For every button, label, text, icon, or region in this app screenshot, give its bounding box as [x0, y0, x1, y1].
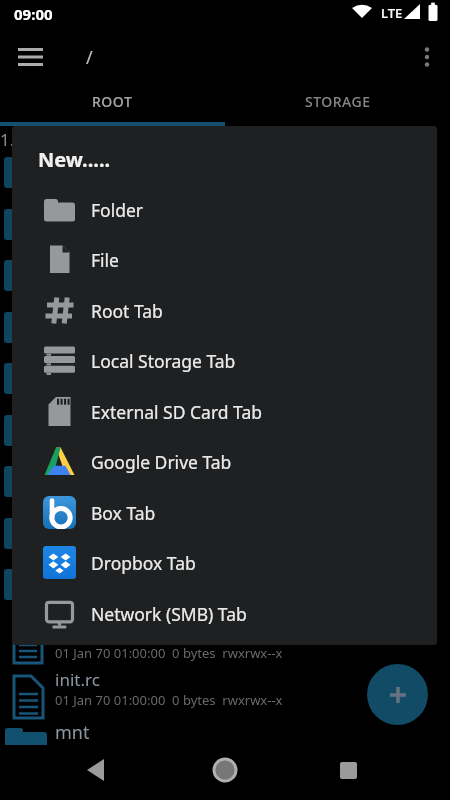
- staticText: Local Storage Tab: [91, 349, 236, 373]
- button[interactable]: Network (SMB) Tab: [12, 588, 437, 639]
- staticText: /: [86, 45, 93, 70]
- button[interactable]: ROOT: [0, 85, 225, 118]
- button[interactable]: [367, 664, 428, 725]
- staticText: Google Drive Tab: [91, 450, 232, 474]
- staticText: Folder: [91, 198, 144, 222]
- staticText: External SD Card Tab: [91, 400, 263, 424]
- staticText: 1.: [0, 128, 15, 151]
- staticText: Network (SMB) Tab: [91, 602, 247, 626]
- button[interactable]: [8, 35, 52, 79]
- staticText: New.....: [38, 146, 111, 173]
- staticText: Dropbox Tab: [91, 551, 196, 575]
- staticText: Box Tab: [91, 501, 156, 525]
- button[interactable]: Root Tab: [12, 285, 437, 336]
- button[interactable]: [207, 752, 243, 788]
- button[interactable]: File: [12, 234, 437, 285]
- button[interactable]: [330, 752, 366, 788]
- button[interactable]: [78, 752, 114, 788]
- staticText: 09:00: [14, 4, 53, 24]
- button[interactable]: Dropbox Tab: [12, 537, 437, 588]
- staticText: init.rc: [55, 668, 100, 691]
- button[interactable]: Local Storage Tab: [12, 335, 437, 386]
- staticText: STORAGE: [305, 92, 371, 111]
- button[interactable]: [408, 38, 446, 76]
- staticText: 01 Jan 70 01:00:00 0 bytes rwxrwx--x: [55, 644, 283, 662]
- staticText: File: [91, 248, 119, 272]
- staticText: Root Tab: [91, 299, 163, 323]
- button[interactable]: Folder: [12, 184, 437, 235]
- staticText: 01 Jan 70 01:00:00 0 bytes rwxrwx--x: [55, 691, 283, 709]
- button[interactable]: External SD Card Tab: [12, 386, 437, 437]
- staticText: mnt: [55, 720, 90, 745]
- button[interactable]: Google Drive Tab: [12, 436, 437, 487]
- staticText: LTE: [381, 4, 403, 22]
- staticText: ROOT: [92, 92, 133, 111]
- button[interactable]: STORAGE: [225, 85, 450, 118]
- button[interactable]: Box Tab: [12, 487, 437, 538]
